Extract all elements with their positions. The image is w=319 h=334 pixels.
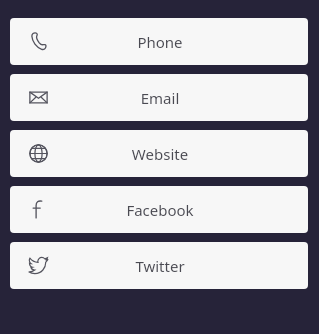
button[interactable]: Twitter — [10, 242, 308, 289]
staticText: Phone — [58, 32, 262, 52]
button[interactable]: Website — [10, 130, 308, 177]
other: Facebook — [27, 198, 50, 221]
button[interactable]: Phone — [10, 18, 308, 65]
button[interactable]: Facebook — [10, 186, 308, 233]
other: Website — [27, 142, 50, 165]
staticText: Website — [58, 144, 262, 164]
button[interactable]: Email — [10, 74, 308, 121]
other: Phone — [27, 30, 50, 53]
staticText: Twitter — [58, 256, 262, 276]
staticText: Facebook — [58, 200, 262, 220]
other: Email — [27, 86, 50, 109]
staticText: Email — [58, 88, 262, 108]
other: Twitter — [27, 254, 50, 277]
